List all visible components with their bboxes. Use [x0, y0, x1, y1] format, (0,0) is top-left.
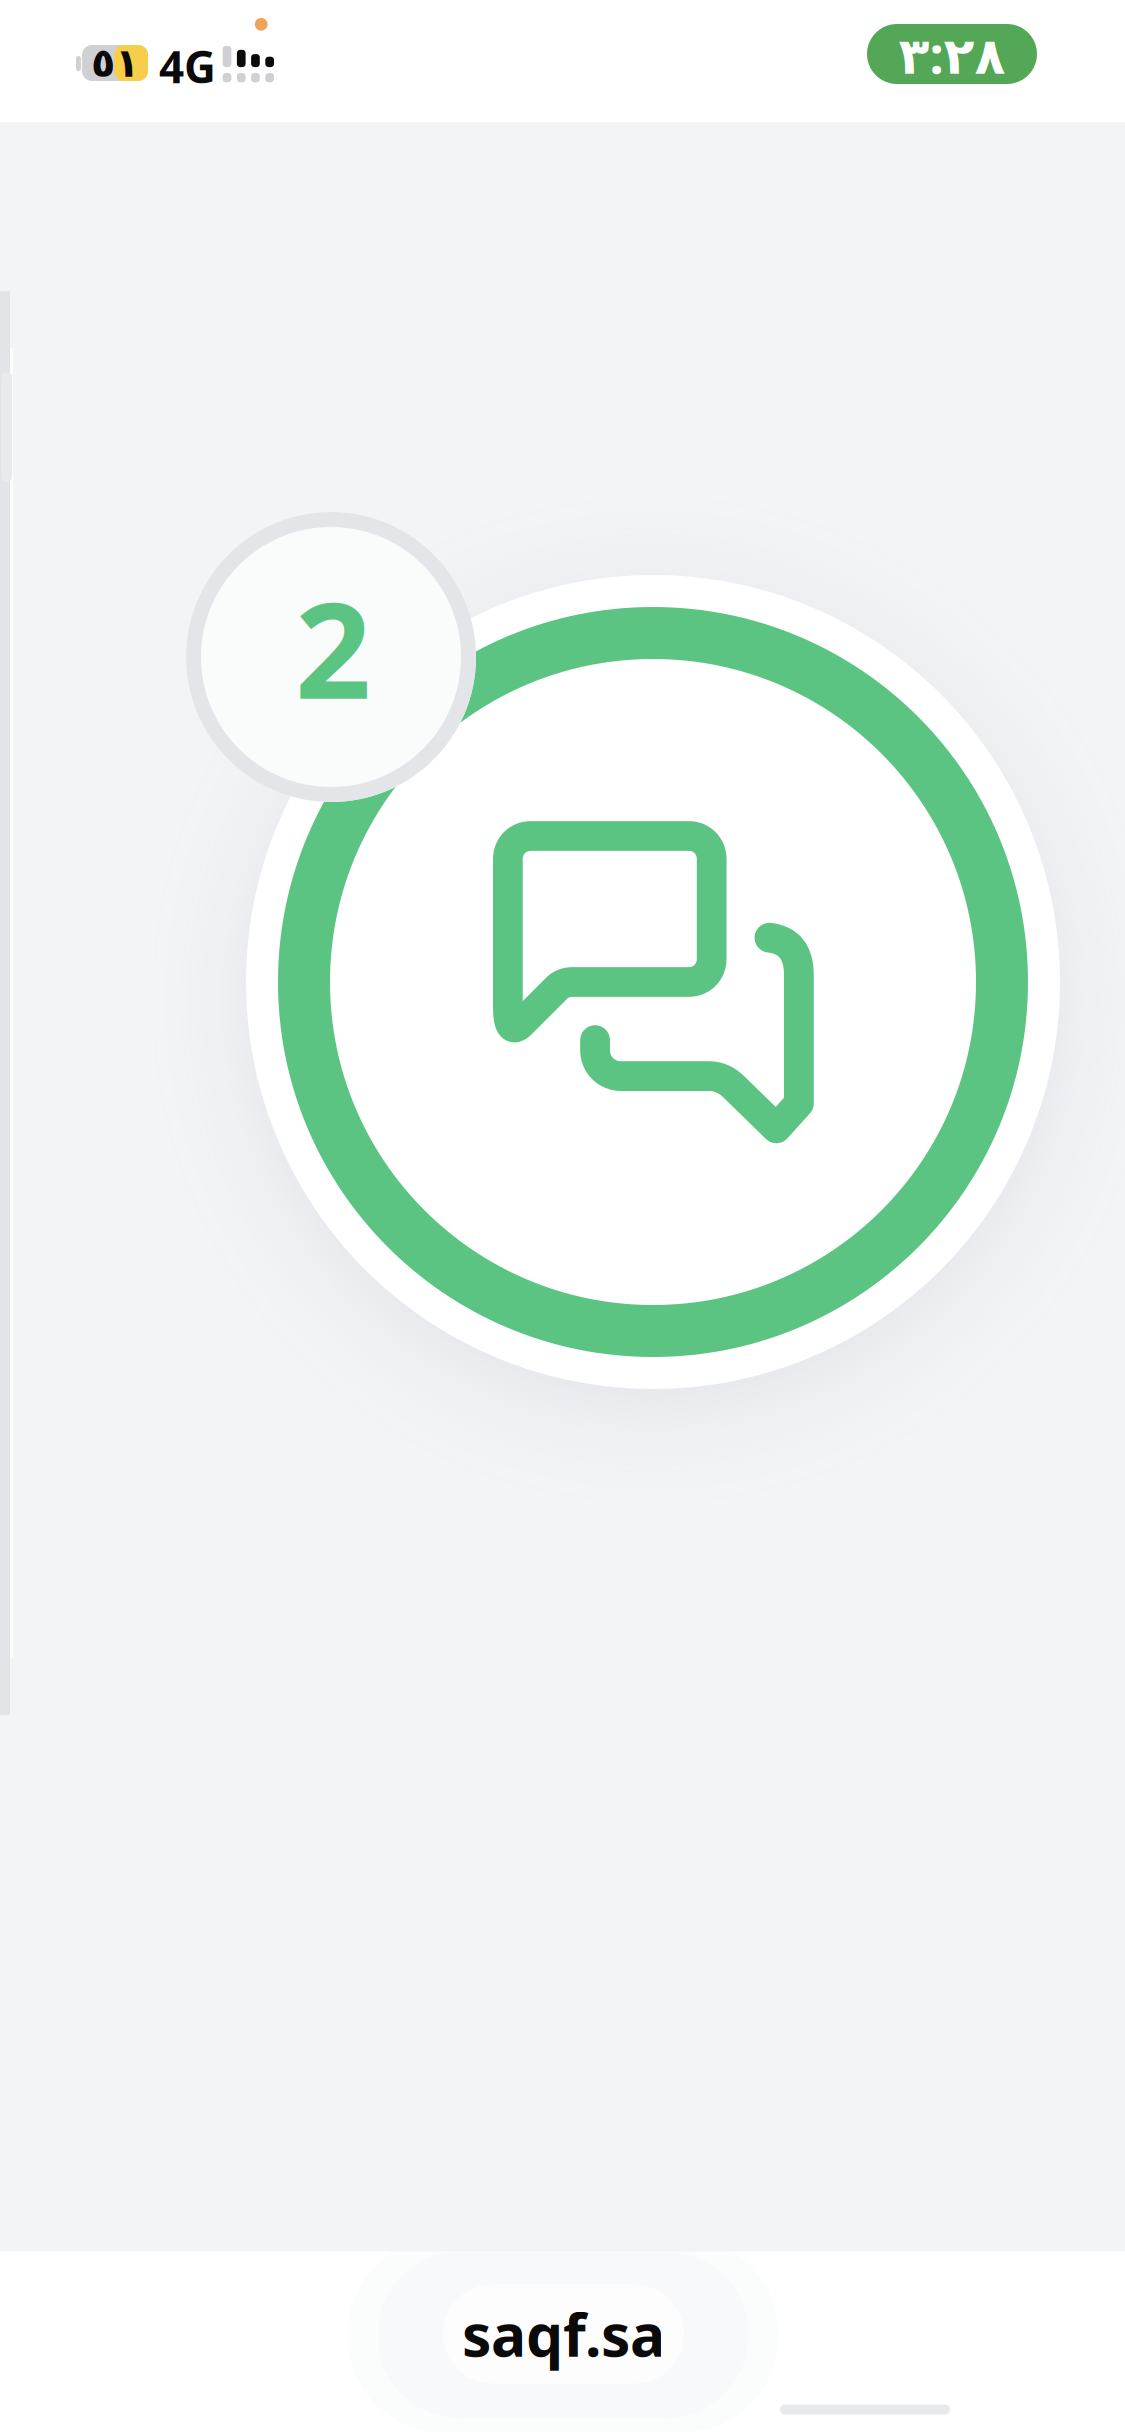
- button[interactable]: ٣:٢٨: [867, 24, 1037, 84]
- staticText: 4G: [159, 37, 216, 95]
- button[interactable]: saqf.sa: [443, 2284, 684, 2383]
- staticText: saqf.sa: [462, 2295, 665, 2373]
- staticText: ٣:٢٨: [898, 20, 1005, 88]
- staticText: ٥١: [91, 40, 139, 86]
- staticText: 2: [295, 558, 371, 736]
